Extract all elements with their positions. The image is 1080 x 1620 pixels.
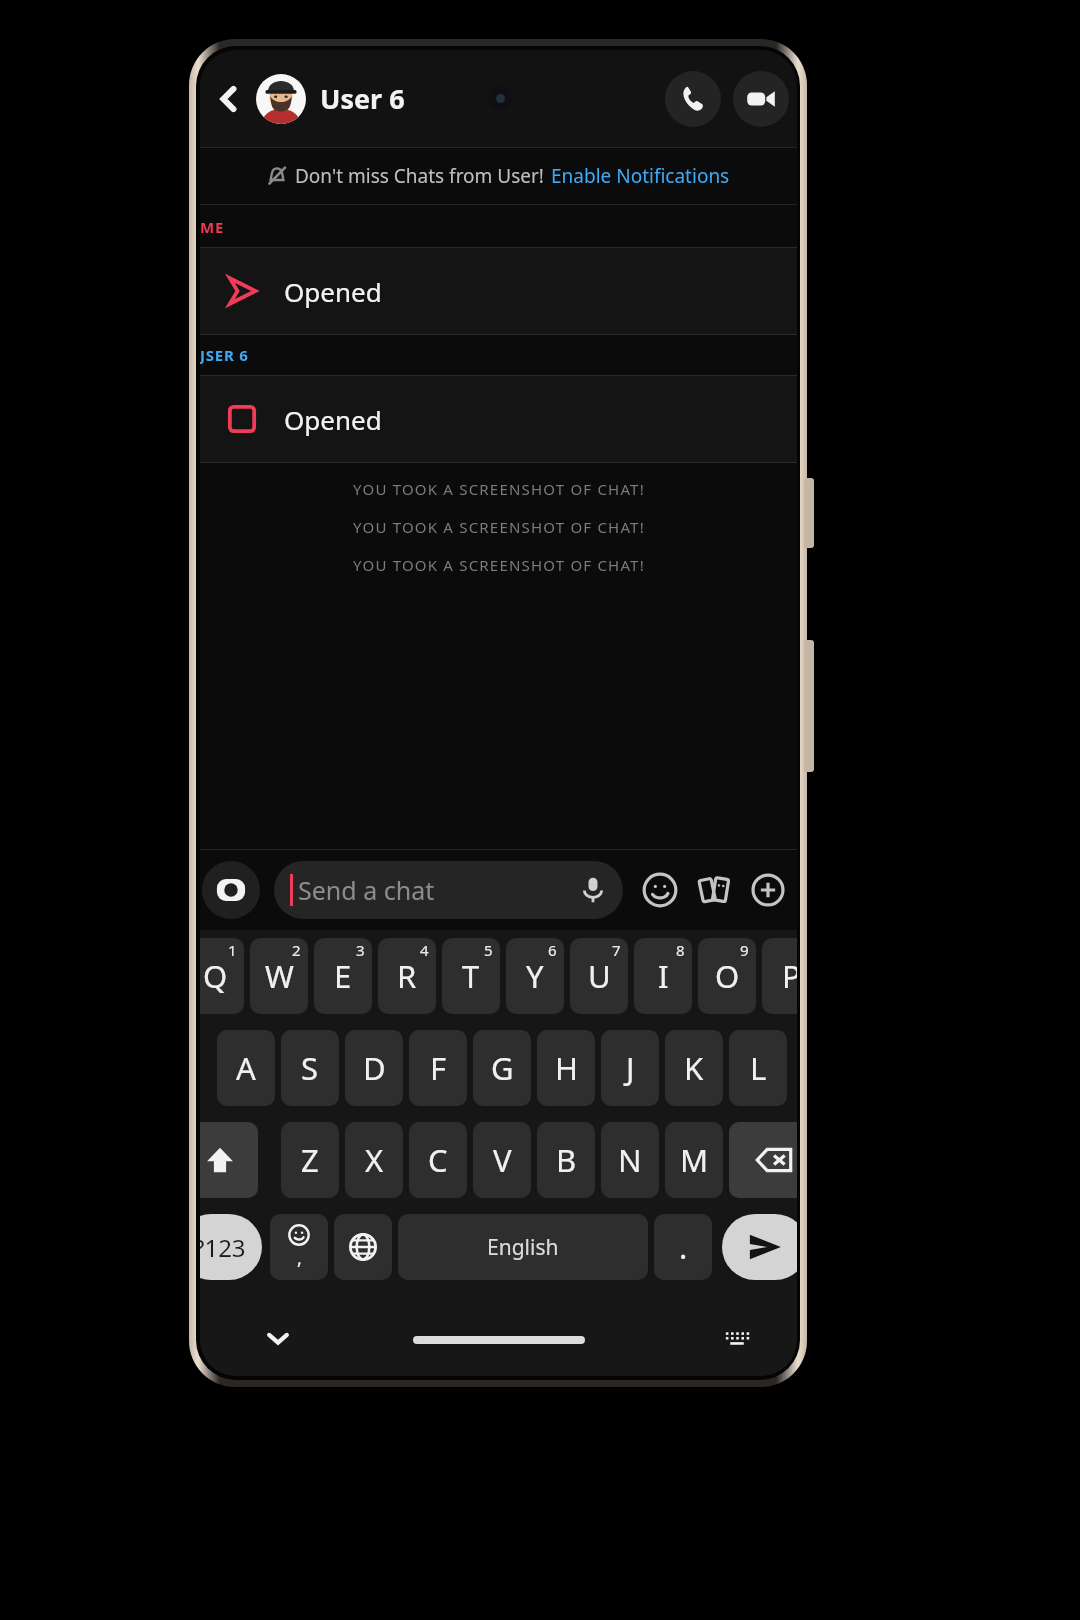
button[interactable]: Stickers [633, 863, 687, 917]
staticText: V [493, 1139, 512, 1181]
staticText: 7 [612, 940, 621, 960]
staticText: 8 [676, 940, 685, 960]
staticText: X [365, 1139, 384, 1181]
staticText: , [297, 1246, 302, 1271]
staticText: Q [203, 955, 228, 997]
staticText: Z [301, 1139, 319, 1181]
button[interactable]: Shift [200, 1122, 258, 1198]
button[interactable]: More options [741, 863, 795, 917]
button[interactable]: X [345, 1122, 403, 1198]
button[interactable]: F [409, 1030, 467, 1106]
button[interactable]: B [537, 1122, 595, 1198]
staticText: Y [526, 955, 544, 997]
button[interactable]: Backspace [729, 1122, 797, 1198]
staticText: L [750, 1047, 767, 1089]
staticText: YOU TOOK A SCREENSHOT OF CHAT! [353, 555, 645, 575]
staticText: YOU TOOK A SCREENSHOT OF CHAT! [353, 479, 645, 499]
button[interactable]: Camera [202, 861, 260, 919]
button[interactable]: O [698, 938, 756, 1014]
button[interactable]: Q [200, 938, 244, 1014]
button[interactable]: Enable Notifications [551, 163, 730, 189]
staticText: J [626, 1047, 635, 1089]
staticText: YOU TOOK A SCREENSHOT OF CHAT! [353, 517, 645, 537]
button[interactable]: English [398, 1214, 648, 1280]
button[interactable]: M [665, 1122, 723, 1198]
staticText: Don't miss Chats from User! [295, 163, 544, 189]
button[interactable]: Back [206, 76, 252, 122]
staticText: 2 [292, 940, 301, 960]
button[interactable]: K [665, 1030, 723, 1106]
button[interactable]: Z [281, 1122, 339, 1198]
button[interactable]: Opened [200, 375, 797, 463]
button[interactable]: S [281, 1030, 339, 1106]
button[interactable]: I [634, 938, 692, 1014]
staticText: E [334, 955, 352, 997]
staticText: 4 [420, 940, 429, 960]
button[interactable]: Send [722, 1214, 797, 1280]
staticText: 6 [548, 940, 557, 960]
staticText: I [658, 955, 669, 997]
staticText: Send a chat [298, 873, 435, 907]
button[interactable]: . [654, 1214, 712, 1280]
staticText: . [679, 1226, 688, 1268]
staticText: Opened [284, 274, 382, 309]
button[interactable]: Send a chat [274, 861, 623, 919]
staticText: C [428, 1139, 448, 1181]
staticText: 9 [740, 940, 749, 960]
staticText: U [588, 955, 611, 997]
button[interactable]: V [473, 1122, 531, 1198]
button[interactable]: D [345, 1030, 403, 1106]
button[interactable]: Opened [200, 247, 797, 335]
staticText: K [684, 1047, 704, 1089]
button[interactable]: R [378, 938, 436, 1014]
staticText: 1 [228, 940, 237, 960]
staticText: R [397, 955, 417, 997]
button[interactable]: Emoji [270, 1214, 328, 1280]
button[interactable]: ?123 [200, 1214, 262, 1280]
staticText: P [782, 955, 797, 997]
button[interactable]: W [250, 938, 308, 1014]
button[interactable]: T [442, 938, 500, 1014]
staticText: O [715, 955, 740, 997]
button[interactable]: Call [665, 71, 721, 127]
staticText: ?123 [200, 1231, 246, 1264]
button[interactable]: Cameos [687, 863, 741, 917]
button[interactable]: G [473, 1030, 531, 1106]
button[interactable]: Hide keyboard [258, 1318, 298, 1358]
staticText: M [680, 1139, 709, 1181]
button[interactable]: L [729, 1030, 787, 1106]
staticText: H [555, 1047, 578, 1089]
button[interactable]: Video call [733, 71, 789, 127]
staticText: S [301, 1047, 319, 1089]
staticText: G [491, 1047, 514, 1089]
staticText: English [487, 1233, 559, 1262]
staticText: W [265, 955, 294, 997]
button[interactable]: C [409, 1122, 467, 1198]
button[interactable]: U [570, 938, 628, 1014]
staticText: D [363, 1047, 386, 1089]
staticText: B [556, 1139, 577, 1181]
staticText: T [462, 955, 480, 997]
staticText: User 6 [320, 80, 405, 117]
button[interactable]: J [601, 1030, 659, 1106]
button[interactable]: A [217, 1030, 275, 1106]
staticText: 5 [484, 940, 493, 960]
staticText: F [430, 1047, 447, 1089]
staticText: A [236, 1047, 256, 1089]
staticText: JSER 6 [200, 345, 249, 365]
staticText: Opened [284, 402, 382, 437]
button[interactable]: E [314, 938, 372, 1014]
staticText: N [618, 1139, 642, 1181]
button[interactable]: Switch keyboard [717, 1318, 757, 1358]
staticText: Enable Notifications [551, 163, 730, 189]
staticText: ME [200, 217, 225, 237]
button[interactable]: Change language [334, 1214, 392, 1280]
button[interactable]: P [762, 938, 797, 1014]
staticText: 3 [356, 940, 365, 960]
button[interactable]: N [601, 1122, 659, 1198]
other: Voice note [579, 876, 607, 904]
button[interactable]: Y [506, 938, 564, 1014]
button[interactable]: H [537, 1030, 595, 1106]
